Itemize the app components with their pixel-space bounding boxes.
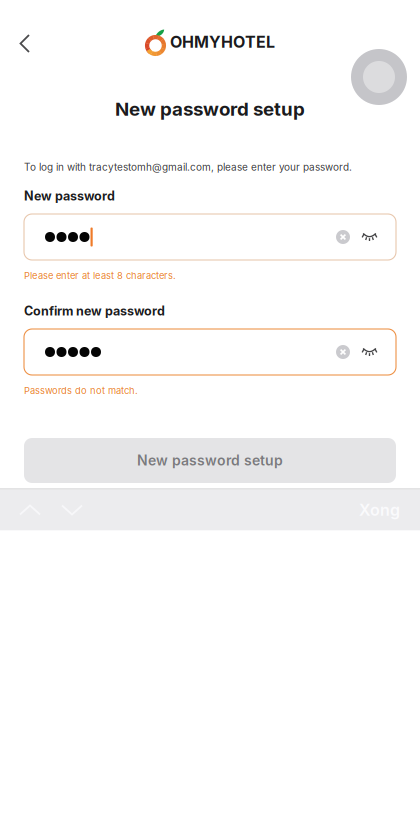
button[interactable]: Back [2, 24, 46, 64]
staticText: Confirm new password [24, 303, 165, 319]
button[interactable]: Support chat [351, 49, 407, 105]
staticText: To log in with tracytestomh@gmail.com, p… [24, 161, 352, 173]
staticText: Please enter at least 8 characters. [24, 270, 176, 281]
staticText: Passwords do not match. [24, 385, 138, 396]
button[interactable]: Show password [356, 220, 383, 254]
button[interactable]: Clear text [330, 335, 356, 369]
staticText: Xong [359, 500, 400, 520]
button[interactable]: Clear text [330, 220, 356, 254]
staticText: New password setup [115, 98, 305, 120]
button[interactable]: Xong [347, 488, 412, 532]
button[interactable]: Show password [356, 335, 383, 369]
staticText: New password setup [137, 452, 283, 469]
button[interactable]: New password setup [24, 438, 396, 483]
staticText: OHMYHOTEL [170, 32, 275, 52]
staticText: New password [24, 188, 115, 204]
